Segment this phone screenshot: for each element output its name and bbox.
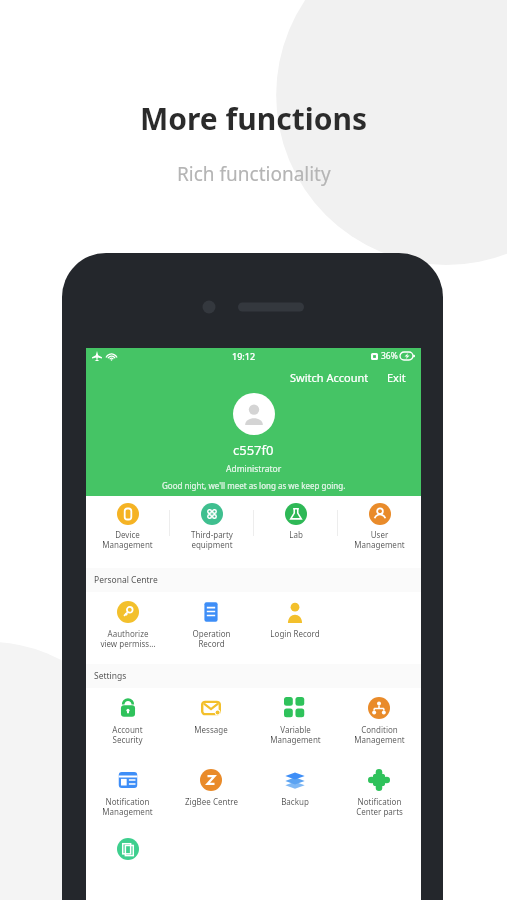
staticText: c557f0 [233,441,274,459]
button[interactable]: User Management [338,496,421,568]
staticText: Login Record [270,628,320,639]
button[interactable]: Profile photo [233,393,275,435]
staticText: Backup [281,796,309,807]
button[interactable]: Third-party equipment [170,496,253,568]
staticText: Personal Centre [94,574,158,586]
button[interactable]: Account Security [86,688,169,760]
staticText: Settings [94,670,127,682]
staticText: Variable Management [270,724,321,745]
staticText: Aauthorize view permiss... [100,628,156,649]
staticText: Administrator [226,463,282,475]
button[interactable]: Condition Management [337,688,421,760]
button[interactable]: ZigBee Centre [169,760,253,832]
staticText: Good night, we'll meet as long as we kee… [162,480,346,491]
button[interactable]: Aauthorize view permiss... [86,592,169,664]
button[interactable]: Switch Account [287,368,372,387]
staticText: Message [194,724,228,735]
staticText: Lab [289,529,303,540]
button[interactable]: Variable Management [253,688,337,760]
button[interactable] [86,832,170,878]
button[interactable]: Login Record [253,592,337,664]
button[interactable]: Operation Record [169,592,253,664]
staticText: 19:12 [232,350,256,362]
staticText: Condition Management [354,724,405,745]
button[interactable]: Lab [254,496,337,568]
staticText: 36% [381,350,398,362]
staticText: User Management [354,529,405,550]
staticText: ZigBee Centre [185,796,238,807]
staticText: Notification Center parts [356,796,403,817]
button[interactable]: Backup [253,760,337,832]
staticText: Rich functionality [177,161,331,187]
staticText: Third-party equipment [191,529,233,550]
button[interactable]: Device Management [86,496,169,568]
staticText: Account Security [112,724,143,745]
button[interactable]: Notification Management [86,760,169,832]
button[interactable]: Message [169,688,253,760]
staticText: Notification Management [102,796,153,817]
staticText: More functions [140,98,367,139]
staticText: Switch Account [290,370,369,385]
button[interactable]: Exit [384,368,409,387]
staticText: Device Management [102,529,153,550]
staticText: Exit [387,370,406,385]
button[interactable]: Notification Center parts [337,760,421,832]
staticText: Operation Record [192,628,231,649]
